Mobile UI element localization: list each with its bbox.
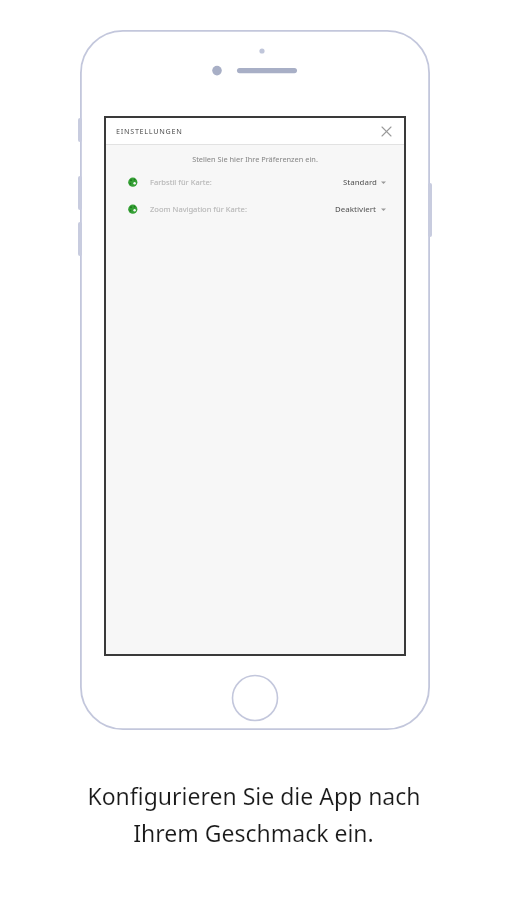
button[interactable]: Zoom Navigation für Karte: [106, 201, 404, 217]
staticText: Standard [343, 177, 377, 188]
staticText: Farbstil für Karte: [150, 177, 212, 187]
staticText: Ihrem Geschmack ein. [133, 817, 374, 848]
staticText: Zoom Navigation für Karte: [150, 204, 247, 214]
button[interactable]: Schließen [378, 123, 394, 139]
staticText: EINSTELLUNGEN [116, 126, 183, 136]
staticText: Konfigurieren Sie die App nach [87, 780, 421, 811]
staticText: Stellen Sie hier Ihre Präferenzen ein. [106, 154, 404, 164]
button[interactable]: Farbstil für Karte: [106, 174, 404, 190]
staticText: Deaktiviert [335, 204, 377, 215]
